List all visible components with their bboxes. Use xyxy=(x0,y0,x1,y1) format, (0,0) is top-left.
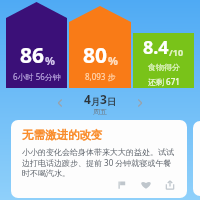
button[interactable]: Flag xyxy=(114,177,130,193)
staticText: 80 xyxy=(83,41,108,70)
button[interactable]: Next day xyxy=(132,95,148,111)
staticText: % xyxy=(108,53,118,68)
button[interactable]: Share xyxy=(162,177,178,193)
button[interactable]: 8.4 xyxy=(133,33,194,88)
staticText: 6小时 56分钟 xyxy=(13,71,61,82)
staticText: 小小的变化会给身体带来大大的益处。试试边打电话边踱步、提前 30 分钟就寝或午餐… xyxy=(22,147,177,179)
staticText: /10 xyxy=(169,46,184,58)
button[interactable]: Previous day xyxy=(52,95,68,111)
staticText: 3 xyxy=(100,91,107,107)
staticText: 周五 xyxy=(93,107,107,116)
staticText: 8,093 步 xyxy=(85,71,116,82)
staticText: % xyxy=(45,53,55,68)
staticText: 日 xyxy=(107,96,116,107)
staticText: 食物得分 xyxy=(148,62,180,72)
staticText: 86 xyxy=(20,41,45,70)
button[interactable]: 86 xyxy=(6,0,67,88)
staticText: 还剩 671 xyxy=(148,76,180,87)
button[interactable]: 80 xyxy=(69,0,131,88)
staticText: 8.4 xyxy=(143,35,169,60)
button[interactable]: Like xyxy=(138,177,154,193)
button[interactable]: 无需激进的改变 xyxy=(11,120,187,198)
staticText: 月 xyxy=(91,96,100,107)
staticText: 4 xyxy=(84,91,91,107)
staticText: 无需激进的改变 xyxy=(22,128,103,142)
